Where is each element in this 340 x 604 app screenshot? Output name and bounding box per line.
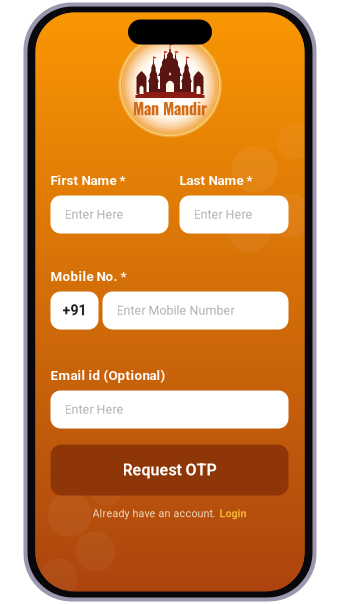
staticText: Enter Here bbox=[193, 207, 252, 222]
staticText: First Name * bbox=[50, 173, 125, 188]
staticText: Login bbox=[219, 507, 246, 520]
button[interactable]: +91 bbox=[50, 291, 98, 329]
staticText: Email id (Optional) bbox=[50, 368, 165, 383]
staticText: Enter Here bbox=[64, 207, 123, 222]
button[interactable]: Request OTP bbox=[50, 444, 288, 495]
staticText: Enter Mobile Number bbox=[116, 303, 234, 318]
staticText: +91 bbox=[62, 302, 86, 319]
staticText: Already have an account. bbox=[92, 507, 215, 520]
staticText: Request OTP bbox=[122, 461, 216, 479]
button[interactable]: Already have an account. bbox=[50, 506, 288, 520]
staticText: Man Mandir bbox=[133, 96, 207, 120]
staticText: Last Name * bbox=[179, 173, 252, 188]
button[interactable]: Enter Here bbox=[50, 390, 288, 428]
staticText: Enter Here bbox=[64, 402, 123, 417]
staticText: Mobile No. * bbox=[50, 269, 126, 284]
button[interactable]: Enter Here bbox=[50, 195, 168, 233]
button[interactable]: Enter Mobile Number bbox=[102, 291, 288, 329]
button[interactable]: Enter Here bbox=[179, 195, 288, 233]
